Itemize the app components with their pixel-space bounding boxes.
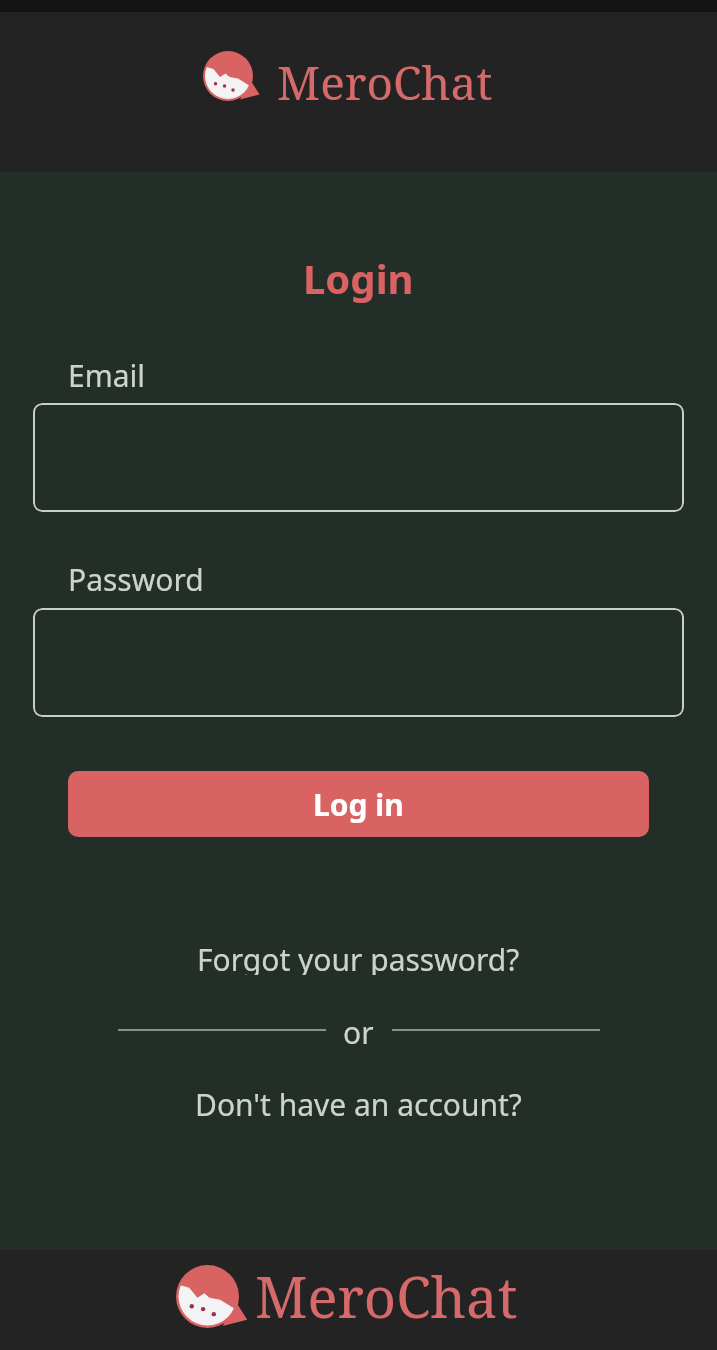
staticText: or [343,1012,374,1048]
staticText: MeroChat [277,51,493,114]
staticText: Don't have an account? [195,1084,522,1120]
button[interactable] [33,403,684,512]
button[interactable]: Don't have an account? [195,1084,522,1120]
button[interactable]: Forgot your password? [197,939,520,975]
staticText: Email [68,355,146,390]
button[interactable] [33,608,684,717]
staticText: Password [68,559,204,594]
staticText: Log in [313,784,404,825]
button[interactable]: Log in [68,771,649,837]
staticText: MeroChat [255,1258,518,1334]
staticText: Forgot your password? [197,939,520,975]
staticText: Login [303,251,414,305]
